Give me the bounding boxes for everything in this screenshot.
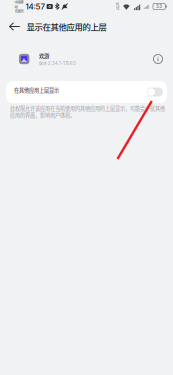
staticText: TE [116, 7, 120, 11]
staticText: VL [116, 2, 120, 6]
button[interactable]: 返回 [0, 16, 26, 37]
staticText: 显示在其他应用的上层 [26, 20, 106, 33]
staticText: 版本 2.34.1-17563 [39, 61, 76, 66]
staticText: 应用的界面，影响用户体验。 [10, 111, 75, 119]
staticText: 此权限允许该应用在当前使用的其他应用的上层显示，可能会干扰其他 [10, 104, 165, 112]
staticText: 中国移动 [14, 0, 23, 9]
staticText: 欢游 [39, 52, 49, 60]
staticText: 53 [156, 4, 162, 9]
button[interactable]: 在其他应用上层显示 [6, 81, 167, 103]
staticText: 无服务 [14, 8, 23, 13]
staticText: 在其他应用上层显示 [14, 86, 59, 94]
button[interactable]: 应用信息 [148, 49, 167, 68]
staticText: 14:57 [25, 2, 45, 11]
